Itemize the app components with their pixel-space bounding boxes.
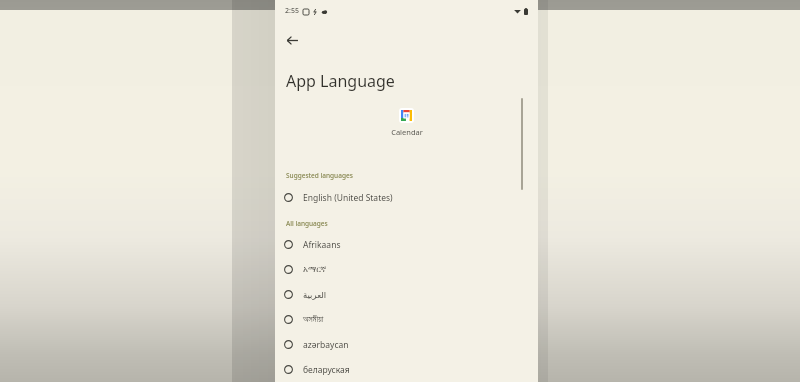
button[interactable]: অসমীয়া (275, 310, 538, 329)
staticText: Suggested languages (286, 171, 353, 180)
staticText: App Language (286, 70, 395, 92)
button[interactable]: Back (279, 27, 305, 53)
staticText: All languages (286, 219, 328, 228)
staticText: Calendar (391, 127, 423, 137)
staticText: አማርኛ (303, 265, 327, 274)
button[interactable]: العربية (275, 285, 538, 304)
button[interactable]: Calendar app icon (399, 108, 414, 123)
staticText: azərbaycan (303, 339, 349, 351)
button[interactable]: azərbaycan (275, 335, 538, 354)
staticText: العربية (303, 290, 327, 300)
button[interactable]: አማርኛ (275, 260, 538, 279)
staticText: Afrikaans (303, 239, 341, 251)
staticText: English (United States) (303, 192, 393, 204)
staticText: অসমীয়া (303, 315, 324, 324)
staticText: беларуская (303, 364, 350, 376)
staticText: 2:55 (285, 6, 299, 16)
button[interactable]: English (United States) (275, 188, 538, 207)
button[interactable]: Afrikaans (275, 235, 538, 254)
button[interactable]: беларуская (275, 360, 538, 379)
